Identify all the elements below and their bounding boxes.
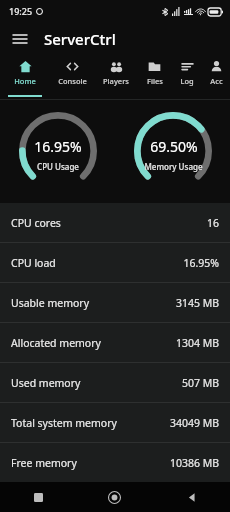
staticText: 3145 MB (175, 296, 219, 310)
staticText: Players (103, 76, 129, 86)
button[interactable]: Players (95, 56, 137, 100)
button[interactable]: Used memory (0, 363, 230, 402)
button[interactable]: Free memory (0, 443, 230, 482)
staticText: 16 (206, 216, 219, 230)
button[interactable]: Home (0, 56, 50, 100)
staticText: CPU cores (11, 216, 61, 230)
staticText: 1304 MB (175, 336, 219, 350)
staticText: 69.50% (150, 137, 198, 156)
staticText: Acc (210, 76, 223, 86)
staticText: 10386 MB (169, 456, 219, 470)
staticText: 34049 MB (169, 416, 219, 430)
staticText: CPU load (11, 256, 56, 270)
staticText: Free memory (11, 456, 77, 470)
button[interactable]: Files (137, 56, 172, 100)
staticText: Log (180, 76, 194, 86)
staticText: Allocated memory (11, 336, 101, 350)
button[interactable]: Usable memory (0, 283, 230, 322)
staticText: Usable memory (11, 296, 90, 310)
button[interactable]: Console (50, 56, 95, 100)
button[interactable]: CPU load (0, 243, 230, 282)
button[interactable]: Total system memory (0, 403, 230, 442)
staticText: Home (14, 76, 36, 86)
staticText: Total system memory (11, 416, 117, 430)
staticText: CPU Usage (37, 161, 79, 172)
staticText: Console (58, 76, 87, 86)
staticText: 19:25 (9, 5, 33, 17)
staticText: ServerCtrl (44, 29, 116, 49)
staticText: Files (147, 76, 163, 86)
staticText: 16.95% (183, 256, 219, 270)
button[interactable]: Open navigation menu (5, 24, 35, 54)
staticText: 16.95% (34, 137, 82, 156)
button[interactable]: Allocated memory (0, 323, 230, 362)
button[interactable]: Recent apps (0, 482, 76, 512)
staticText: 507 MB (181, 376, 219, 390)
button[interactable]: Home (76, 482, 153, 512)
staticText: Memory Usage (144, 161, 203, 172)
button[interactable]: Acc (202, 56, 230, 100)
button[interactable]: CPU cores (0, 203, 230, 242)
staticText: Used memory (11, 376, 81, 390)
button[interactable]: Back (153, 482, 230, 512)
button[interactable]: Log (172, 56, 202, 100)
